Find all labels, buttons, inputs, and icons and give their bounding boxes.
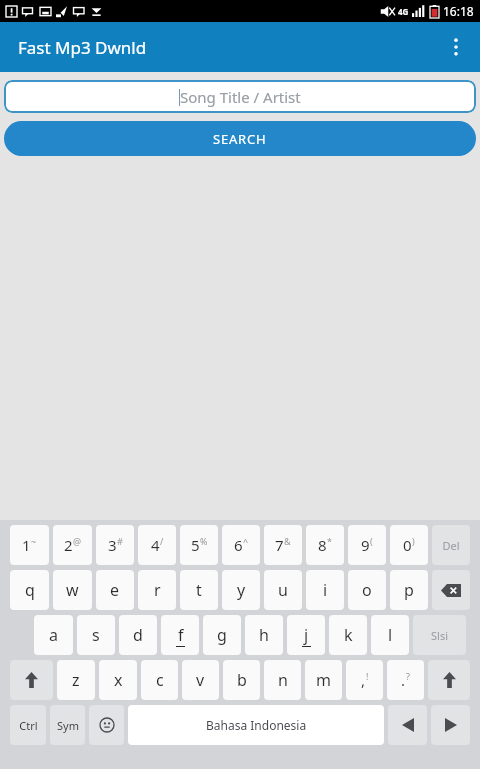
- staticText: t: [196, 579, 202, 601]
- button[interactable]: Slsi: [413, 615, 466, 655]
- button[interactable]: Emoji: [89, 705, 124, 745]
- button[interactable]: Bahasa Indonesia: [128, 705, 384, 745]
- button[interactable]: SEARCH: [4, 121, 476, 156]
- button[interactable]: 3: [96, 525, 134, 565]
- button[interactable]: Sym: [50, 705, 85, 745]
- button[interactable]: 5: [180, 525, 218, 565]
- button[interactable]: g: [203, 615, 241, 655]
- button[interactable]: ,: [346, 660, 383, 700]
- button[interactable]: s: [77, 615, 115, 655]
- staticText: m: [316, 669, 331, 691]
- staticText: Sym: [57, 718, 79, 733]
- staticText: (: [370, 535, 373, 547]
- button[interactable]: p: [390, 570, 428, 610]
- button[interactable]: Shift: [428, 660, 470, 700]
- staticText: u: [278, 579, 288, 601]
- button[interactable]: k: [329, 615, 367, 655]
- staticText: k: [344, 624, 353, 646]
- button[interactable]: u: [264, 570, 302, 610]
- button[interactable]: d: [119, 615, 157, 655]
- button[interactable]: 0: [390, 525, 428, 565]
- staticText: ,: [361, 670, 366, 690]
- staticText: a: [49, 624, 58, 646]
- staticText: r: [154, 579, 161, 601]
- staticText: b: [237, 669, 247, 691]
- button[interactable]: 6: [222, 525, 260, 565]
- staticText: v: [196, 669, 205, 691]
- staticText: Fast Mp3 Dwnld: [18, 36, 147, 59]
- staticText: f: [178, 624, 184, 646]
- staticText: 16:18: [443, 3, 474, 19]
- button[interactable]: y: [222, 570, 260, 610]
- staticText: Del: [442, 538, 460, 553]
- button[interactable]: 2: [53, 525, 92, 565]
- button[interactable]: i: [306, 570, 344, 610]
- staticText: 4: [151, 535, 160, 555]
- staticText: ?: [406, 670, 410, 682]
- staticText: w: [66, 579, 79, 601]
- button[interactable]: 9: [348, 525, 386, 565]
- button[interactable]: Del: [432, 525, 470, 565]
- staticText: z: [72, 669, 80, 691]
- button[interactable]: n: [264, 660, 301, 700]
- staticText: d: [133, 624, 143, 646]
- button[interactable]: Ctrl: [10, 705, 46, 745]
- button[interactable]: 1: [10, 525, 49, 565]
- button[interactable]: 7: [264, 525, 302, 565]
- button[interactable]: .: [387, 660, 424, 700]
- staticText: SEARCH: [213, 130, 267, 148]
- button[interactable]: Move cursor right: [431, 705, 470, 745]
- staticText: 1: [22, 535, 31, 555]
- button[interactable]: c: [141, 660, 178, 700]
- staticText: %: [200, 535, 208, 547]
- button[interactable]: f: [161, 615, 199, 655]
- staticText: n: [278, 669, 288, 691]
- button[interactable]: q: [10, 570, 49, 610]
- staticText: /: [160, 535, 164, 547]
- button[interactable]: o: [348, 570, 386, 610]
- staticText: #: [117, 535, 123, 547]
- staticText: ^: [243, 535, 249, 547]
- button[interactable]: r: [138, 570, 176, 610]
- staticText: ~: [31, 535, 37, 547]
- staticText: h: [259, 624, 269, 646]
- button[interactable]: More options: [432, 22, 480, 72]
- button[interactable]: l: [371, 615, 409, 655]
- button[interactable]: e: [96, 570, 134, 610]
- button[interactable]: v: [182, 660, 219, 700]
- staticText: l: [388, 624, 393, 646]
- button[interactable]: t: [180, 570, 218, 610]
- staticText: 7: [275, 535, 284, 555]
- staticText: p: [404, 579, 414, 601]
- button[interactable]: z: [57, 660, 95, 700]
- button[interactable]: Move cursor left: [388, 705, 427, 745]
- button[interactable]: m: [305, 660, 342, 700]
- button[interactable]: Song Title / Artist: [4, 80, 476, 113]
- staticText: Ctrl: [19, 718, 38, 733]
- staticText: q: [25, 579, 35, 601]
- button[interactable]: 4: [138, 525, 176, 565]
- staticText: .: [401, 670, 406, 690]
- button[interactable]: 8: [306, 525, 344, 565]
- button[interactable]: Shift: [10, 660, 53, 700]
- button[interactable]: b: [223, 660, 260, 700]
- staticText: ): [412, 535, 415, 547]
- staticText: 2: [64, 535, 73, 555]
- staticText: j: [304, 624, 309, 646]
- button[interactable]: w: [53, 570, 92, 610]
- staticText: *: [327, 535, 332, 547]
- button[interactable]: j: [287, 615, 325, 655]
- staticText: x: [114, 669, 123, 691]
- staticText: c: [156, 669, 164, 691]
- button[interactable]: a: [34, 615, 73, 655]
- staticText: e: [110, 579, 120, 601]
- staticText: 9: [361, 535, 370, 555]
- staticText: 6: [234, 535, 243, 555]
- button[interactable]: Backspace: [432, 570, 470, 610]
- staticText: 8: [318, 535, 327, 555]
- staticText: i: [323, 579, 328, 601]
- staticText: !: [366, 670, 369, 682]
- staticText: g: [217, 624, 227, 646]
- button[interactable]: h: [245, 615, 283, 655]
- button[interactable]: x: [99, 660, 137, 700]
